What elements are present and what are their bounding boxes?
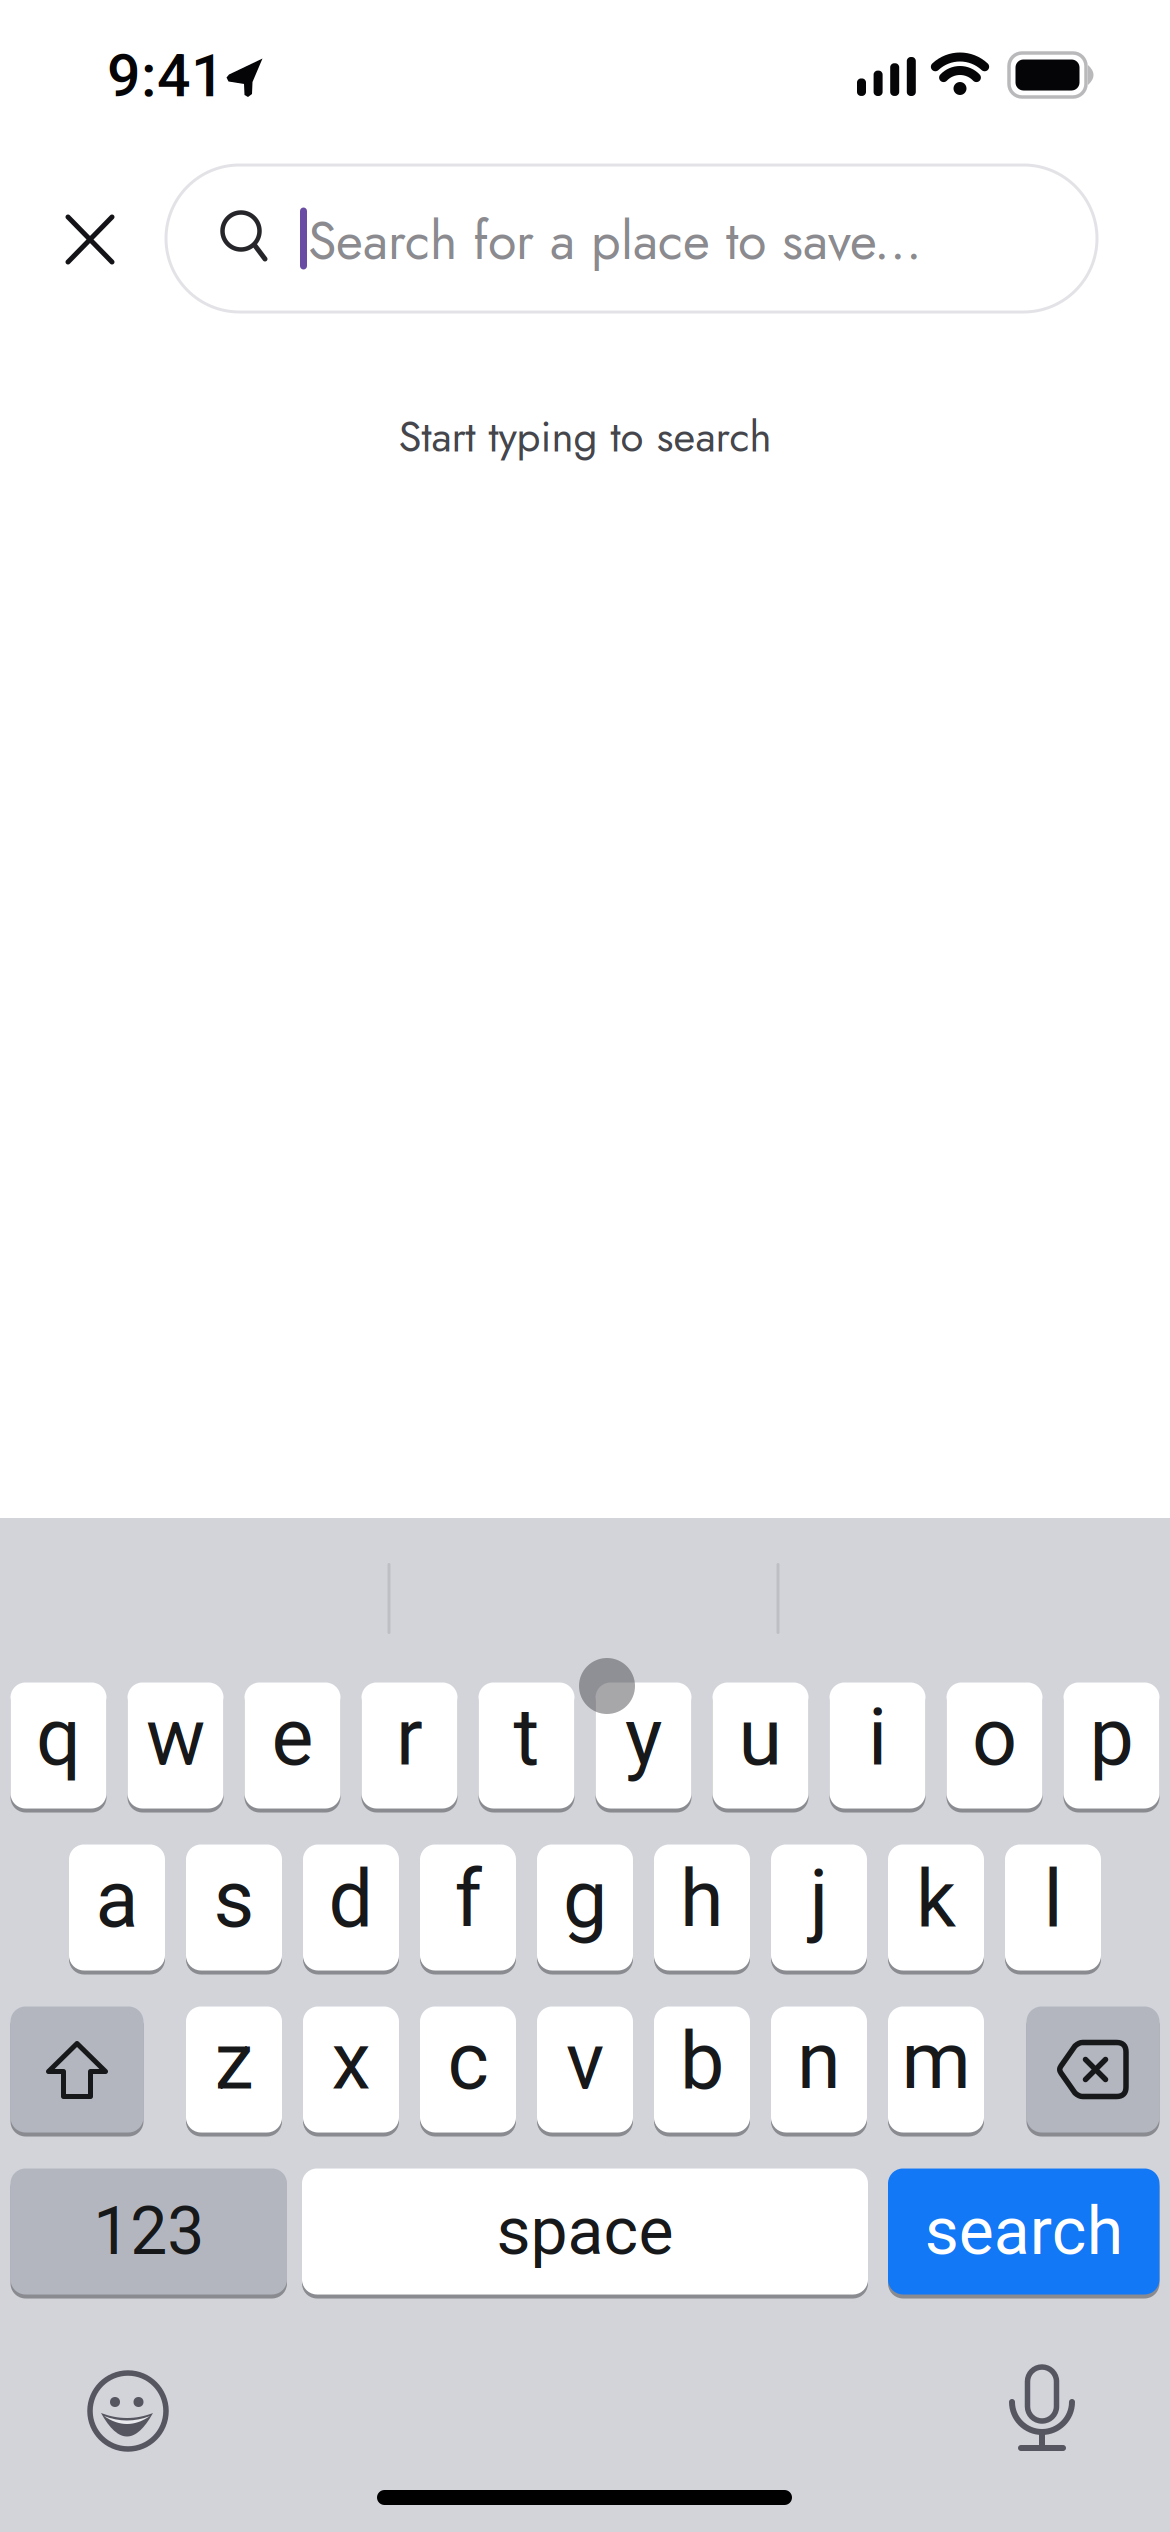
button[interactable]: x bbox=[303, 2006, 399, 2132]
staticText: g bbox=[563, 1853, 607, 1946]
button[interactable]: q bbox=[10, 1682, 106, 1808]
staticText: u bbox=[738, 1691, 782, 1784]
staticText: 9:41 bbox=[107, 41, 225, 110]
button[interactable]: Emoji bbox=[73, 2356, 183, 2466]
staticText: o bbox=[972, 1691, 1017, 1784]
staticText: a bbox=[95, 1853, 138, 1946]
button[interactable]: v bbox=[537, 2006, 633, 2132]
button[interactable]: e bbox=[244, 1682, 340, 1808]
button[interactable]: f bbox=[420, 1844, 516, 1970]
button[interactable]: m bbox=[888, 2006, 984, 2132]
button[interactable]: i bbox=[829, 1682, 925, 1808]
button[interactable]: Delete bbox=[1026, 2006, 1159, 2132]
button[interactable]: n bbox=[771, 2006, 867, 2132]
button[interactable]: 123 bbox=[10, 2168, 287, 2294]
button[interactable]: Shift bbox=[10, 2006, 143, 2132]
button[interactable]: b bbox=[654, 2006, 750, 2132]
button[interactable]: space bbox=[302, 2168, 868, 2294]
button[interactable]: Close bbox=[45, 193, 135, 283]
button[interactable]: p bbox=[1063, 1682, 1159, 1808]
staticText: j bbox=[809, 1853, 828, 1946]
button[interactable]: l bbox=[1005, 1844, 1101, 1970]
staticText: search bbox=[925, 2193, 1123, 2270]
button[interactable]: search bbox=[888, 2168, 1159, 2294]
staticText: c bbox=[447, 2015, 488, 2108]
button[interactable]: k bbox=[888, 1844, 984, 1970]
staticText: f bbox=[454, 1853, 481, 1946]
button[interactable]: z bbox=[186, 2006, 282, 2132]
staticText: d bbox=[328, 1853, 373, 1946]
button[interactable]: Dictate bbox=[987, 2362, 1097, 2472]
staticText: x bbox=[331, 2015, 370, 2108]
button[interactable]: h bbox=[654, 1844, 750, 1970]
button[interactable]: g bbox=[537, 1844, 633, 1970]
button[interactable]: w bbox=[127, 1682, 223, 1808]
button[interactable]: u bbox=[712, 1682, 808, 1808]
staticText: Start typing to search bbox=[398, 407, 771, 467]
staticText: m bbox=[901, 2015, 970, 2108]
staticText: l bbox=[1043, 1853, 1062, 1946]
staticText: s bbox=[213, 1853, 254, 1946]
staticText: 123 bbox=[93, 2193, 204, 2270]
staticText: Search for a place to save... bbox=[308, 203, 922, 278]
staticText: i bbox=[868, 1691, 887, 1784]
button[interactable]: o bbox=[946, 1682, 1042, 1808]
staticText: r bbox=[396, 1691, 423, 1784]
staticText: t bbox=[513, 1691, 539, 1784]
staticText: y bbox=[625, 1691, 662, 1784]
button[interactable]: r bbox=[361, 1682, 457, 1808]
button[interactable]: s bbox=[186, 1844, 282, 1970]
button[interactable]: d bbox=[303, 1844, 399, 1970]
staticText: h bbox=[680, 1853, 724, 1946]
staticText: w bbox=[146, 1691, 205, 1784]
button[interactable]: a bbox=[69, 1844, 165, 1970]
button[interactable]: t bbox=[478, 1682, 574, 1808]
staticText: z bbox=[214, 2015, 253, 2108]
button[interactable]: Search for a place to save... bbox=[166, 165, 1097, 312]
staticText: e bbox=[271, 1691, 313, 1784]
staticText: p bbox=[1089, 1691, 1133, 1784]
staticText: space bbox=[496, 2193, 673, 2270]
staticText: b bbox=[680, 2015, 724, 2108]
staticText: v bbox=[566, 2015, 604, 2108]
button[interactable]: c bbox=[420, 2006, 516, 2132]
staticText: k bbox=[916, 1853, 956, 1946]
button[interactable]: y bbox=[595, 1682, 691, 1808]
button[interactable]: j bbox=[771, 1844, 867, 1970]
staticText: q bbox=[36, 1691, 81, 1784]
staticText: n bbox=[797, 2015, 841, 2108]
